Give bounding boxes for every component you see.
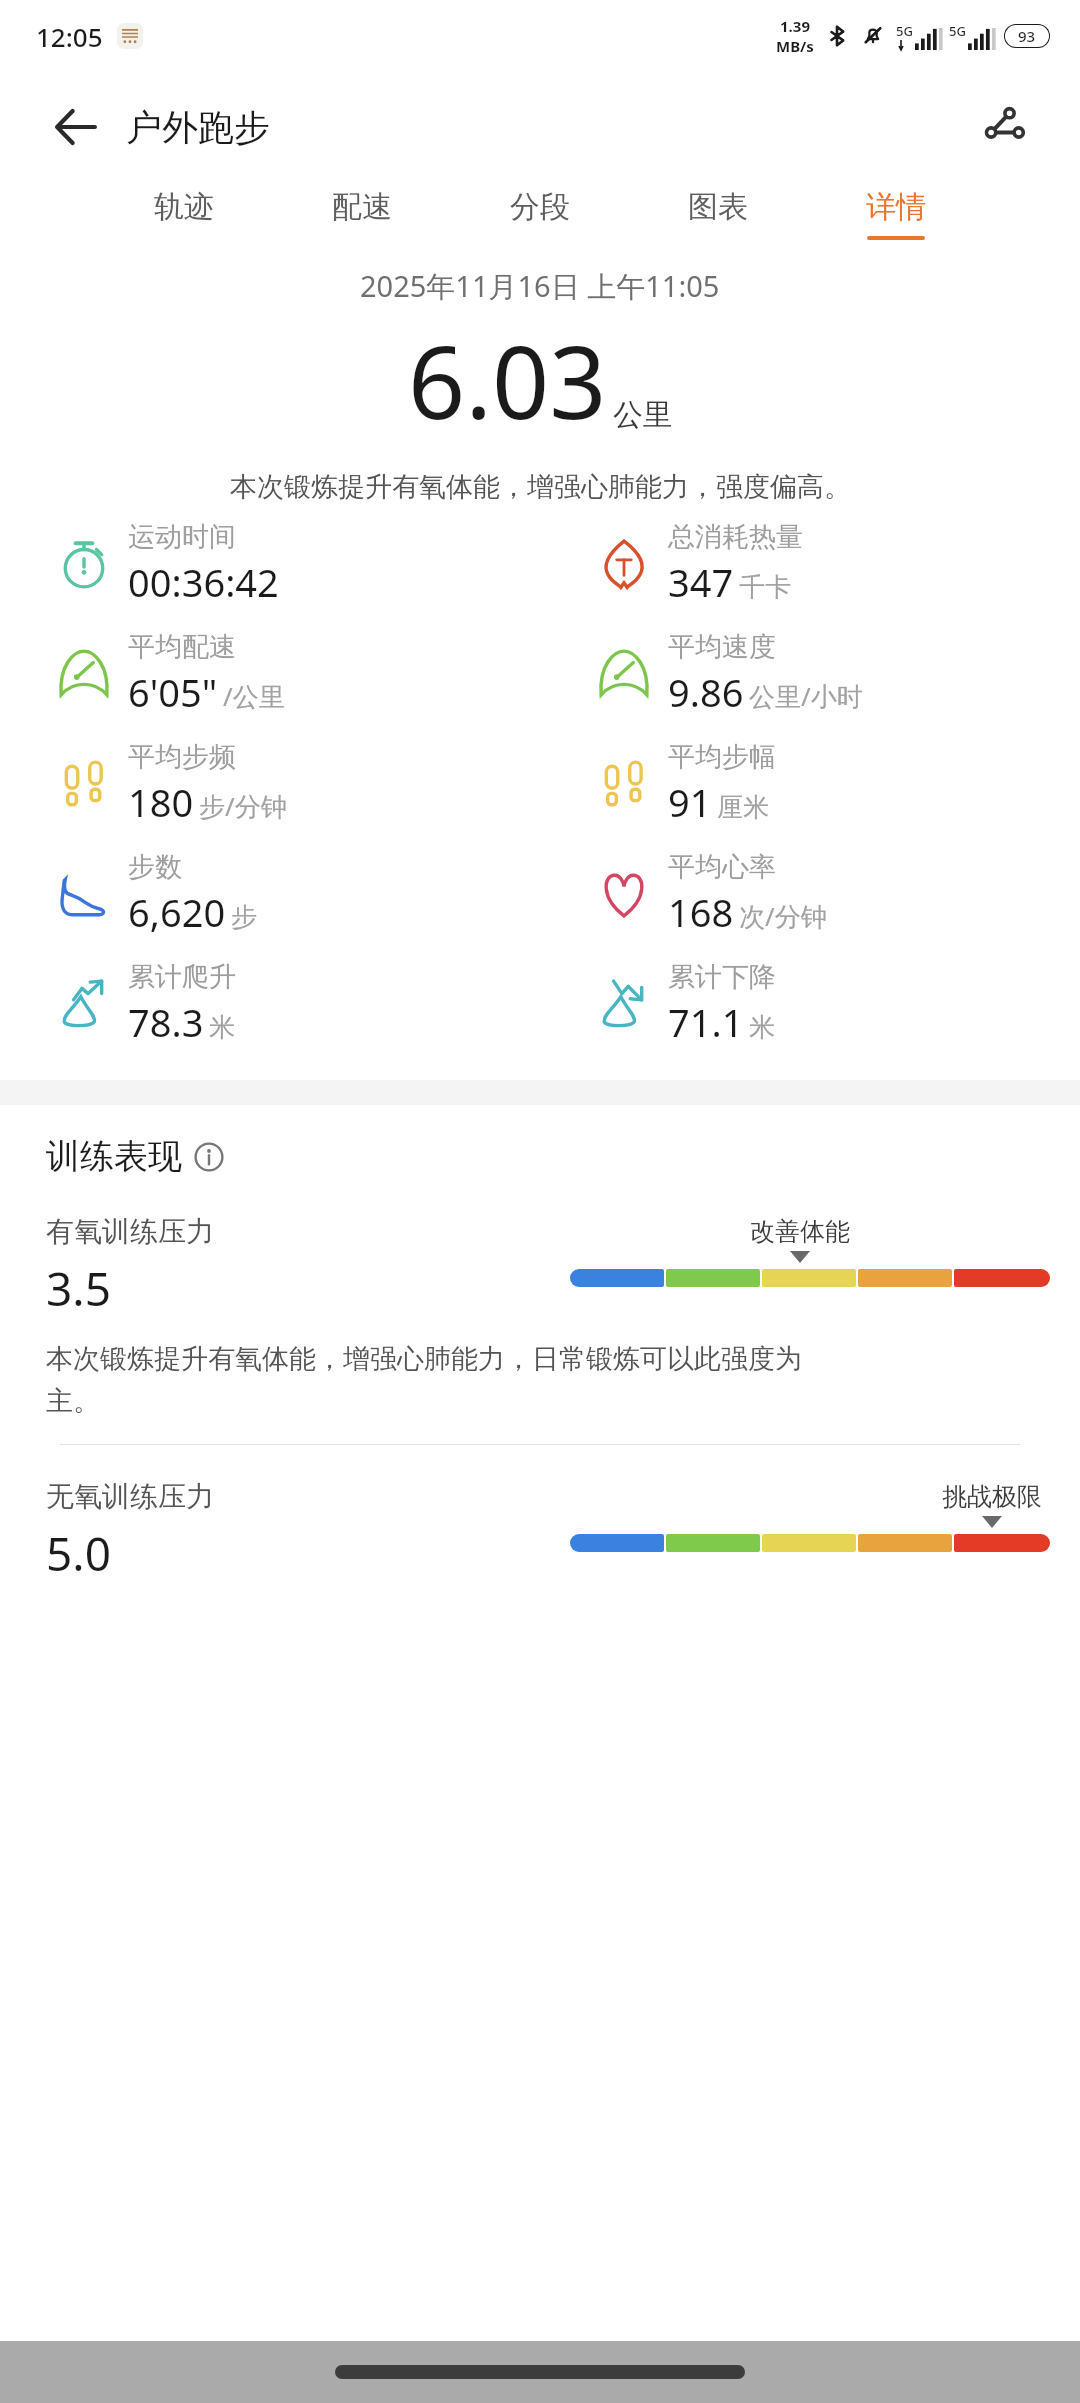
staticText: 配速 bbox=[332, 188, 392, 226]
button[interactable]: 平均速度 bbox=[540, 630, 1080, 718]
button[interactable]: 平均步幅 bbox=[540, 740, 1080, 828]
staticText: 训练表现 bbox=[46, 1135, 182, 1178]
staticText: 千卡 bbox=[739, 571, 791, 604]
staticText: 本次锻炼提升有氧体能，增强心肺能力，日常锻炼可以此强度为 主。 bbox=[46, 1342, 802, 1418]
staticText: 运动时间 bbox=[128, 520, 236, 554]
button[interactable]: 累计爬升 bbox=[0, 960, 540, 1048]
staticText: 本次锻炼提升有氧体能，增强心肺能力，强度偏高。 bbox=[230, 470, 851, 504]
button[interactable]: 详情 bbox=[862, 182, 930, 246]
staticText: 详情 bbox=[866, 188, 926, 226]
staticText: 图表 bbox=[688, 188, 748, 226]
button[interactable]: 平均配速 bbox=[0, 630, 540, 718]
staticText: 5.0 bbox=[46, 1522, 111, 1585]
staticText: 分段 bbox=[510, 188, 570, 226]
staticText: 71.1 bbox=[668, 996, 744, 1048]
staticText: 改善体能 bbox=[750, 1216, 850, 1247]
staticText: MB/s bbox=[776, 36, 814, 56]
staticText: 步/分钟 bbox=[199, 788, 287, 824]
staticText: 平均心率 bbox=[668, 850, 776, 884]
button[interactable]: 平均步频 bbox=[0, 740, 540, 828]
button[interactable]: 累计下降 bbox=[540, 960, 1080, 1048]
staticText: 厘米 bbox=[717, 791, 769, 824]
button[interactable]: 步数 bbox=[0, 850, 540, 938]
button[interactable]: 分段 bbox=[506, 182, 574, 246]
staticText: 3.5 bbox=[46, 1257, 111, 1320]
staticText: 总消耗热量 bbox=[668, 520, 803, 554]
staticText: 米 bbox=[209, 1011, 235, 1044]
staticText: 2025年11月16日 上午11:05 bbox=[360, 266, 720, 306]
staticText: 平均速度 bbox=[668, 630, 776, 664]
staticText: 米 bbox=[749, 1011, 775, 1044]
staticText: 次/分钟 bbox=[739, 898, 827, 934]
button[interactable]: 训练表现 bbox=[46, 1135, 224, 1178]
staticText: 5G bbox=[896, 22, 913, 40]
staticText: 6.03 bbox=[408, 312, 607, 448]
staticText: 91 bbox=[668, 776, 712, 828]
button[interactable]: 图表 bbox=[684, 182, 752, 246]
staticText: 347 bbox=[668, 556, 734, 608]
staticText: 步数 bbox=[128, 850, 182, 884]
other: Info bbox=[194, 1142, 224, 1172]
button[interactable]: 平均心率 bbox=[540, 850, 1080, 938]
staticText: 平均步幅 bbox=[668, 740, 776, 774]
staticText: 挑战极限 bbox=[942, 1481, 1042, 1512]
staticText: 9.86 bbox=[668, 666, 744, 718]
staticText: /公里 bbox=[223, 678, 285, 714]
staticText: 1.39 bbox=[780, 16, 810, 36]
staticText: 5G bbox=[949, 22, 966, 40]
staticText: 6,620 bbox=[128, 886, 226, 938]
staticText: 累计爬升 bbox=[128, 960, 236, 994]
staticText: 步 bbox=[231, 901, 257, 934]
staticText: 180 bbox=[128, 776, 194, 828]
staticText: 93 bbox=[1018, 26, 1036, 46]
staticText: 平均配速 bbox=[128, 630, 236, 664]
button[interactable]: Share bbox=[972, 95, 1036, 159]
staticText: 有氧训练压力 bbox=[46, 1214, 214, 1249]
button[interactable]: 总消耗热量 bbox=[540, 520, 1080, 608]
staticText: 无氧训练压力 bbox=[46, 1479, 214, 1514]
staticText: 户外跑步 bbox=[126, 105, 270, 150]
staticText: 168 bbox=[668, 886, 734, 938]
staticText: 78.3 bbox=[128, 996, 204, 1048]
staticText: 6'05" bbox=[128, 666, 218, 718]
staticText: 平均步频 bbox=[128, 740, 236, 774]
staticText: 累计下降 bbox=[668, 960, 776, 994]
staticText: 12:05 bbox=[36, 19, 103, 54]
staticText: 公里/小时 bbox=[749, 678, 863, 714]
staticText: 公里 bbox=[613, 396, 673, 434]
button[interactable]: 配速 bbox=[328, 182, 396, 246]
button[interactable]: 运动时间 bbox=[0, 520, 540, 608]
staticText: 00:36:42 bbox=[128, 556, 279, 608]
button[interactable]: Back bbox=[48, 99, 104, 155]
button[interactable]: 轨迹 bbox=[150, 182, 218, 246]
staticText: 轨迹 bbox=[154, 188, 214, 226]
